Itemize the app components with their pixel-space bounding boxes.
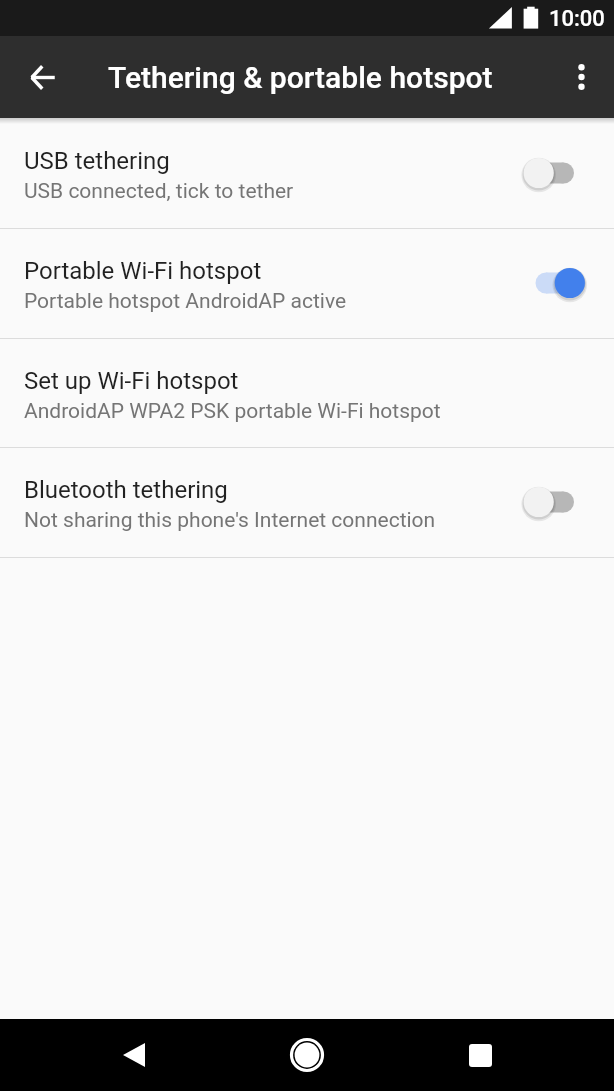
button[interactable]: USB tethering, off	[523, 149, 597, 197]
button[interactable]: Set up Wi-Fi hotspot	[0, 338, 614, 448]
staticText: AndroidAP WPA2 PSK portable Wi-Fi hotspo…	[24, 399, 441, 424]
button[interactable]: Portable Wi-Fi hotspot, on	[523, 259, 597, 307]
staticText: Tethering & portable hotspot	[108, 60, 493, 95]
button[interactable]: More options	[551, 47, 611, 107]
staticText: USB connected, tick to tether	[24, 179, 294, 204]
button[interactable]: Back	[99, 1020, 169, 1090]
staticText: Set up Wi-Fi hotspot	[24, 367, 239, 395]
button[interactable]: Navigate up	[10, 45, 74, 109]
staticText: Bluetooth tethering	[24, 476, 228, 504]
button[interactable]: USB tethering	[0, 118, 614, 228]
button[interactable]: Bluetooth tethering	[0, 447, 614, 557]
button[interactable]: Portable Wi-Fi hotspot	[0, 228, 614, 338]
staticText: 10:00	[549, 6, 605, 32]
staticText: Portable hotspot AndroidAP active	[24, 289, 347, 314]
staticText: USB tethering	[24, 147, 170, 175]
button[interactable]: Home	[272, 1020, 342, 1090]
staticText: Portable Wi-Fi hotspot	[24, 257, 262, 285]
button[interactable]: Bluetooth tethering, off	[523, 478, 597, 526]
staticText: Not sharing this phone's Internet connec…	[24, 508, 436, 533]
button[interactable]: Recent apps	[445, 1020, 515, 1090]
